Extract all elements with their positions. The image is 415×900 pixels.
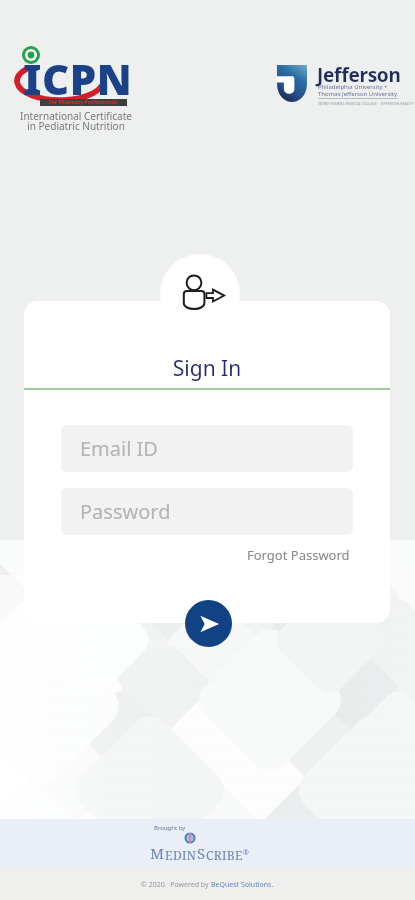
button[interactable]: Email ID [61, 425, 353, 472]
staticText: Password [80, 498, 171, 525]
staticText: International Certificate in Pediatric N… [11, 109, 141, 133]
staticText: © 2020. Powered by [141, 880, 211, 890]
staticText: M [150, 843, 165, 863]
button[interactable]: Forgot Password [247, 546, 350, 564]
staticText: Sign In [24, 354, 390, 383]
staticText: Philadelphia University + Thomas Jeffers… [318, 83, 398, 98]
staticText: ICPN [23, 50, 133, 107]
button[interactable]: BeQuest Solutions. [211, 880, 274, 890]
staticText: CRIBE [206, 847, 243, 863]
staticText: For Pharmacy Professionals [49, 99, 118, 106]
staticText: Jefferson [317, 62, 401, 88]
staticText: S [197, 843, 206, 863]
button[interactable]: Password [61, 488, 353, 535]
staticText: EDIN [165, 847, 197, 863]
staticText: SIDNEY KIMMEL MEDICAL COLLEGE · JEFFERSO… [318, 101, 414, 106]
staticText: Email ID [80, 435, 158, 462]
button[interactable]: Sign in [185, 600, 232, 647]
staticText: ® [243, 848, 249, 858]
staticText: Brought by [154, 824, 186, 832]
